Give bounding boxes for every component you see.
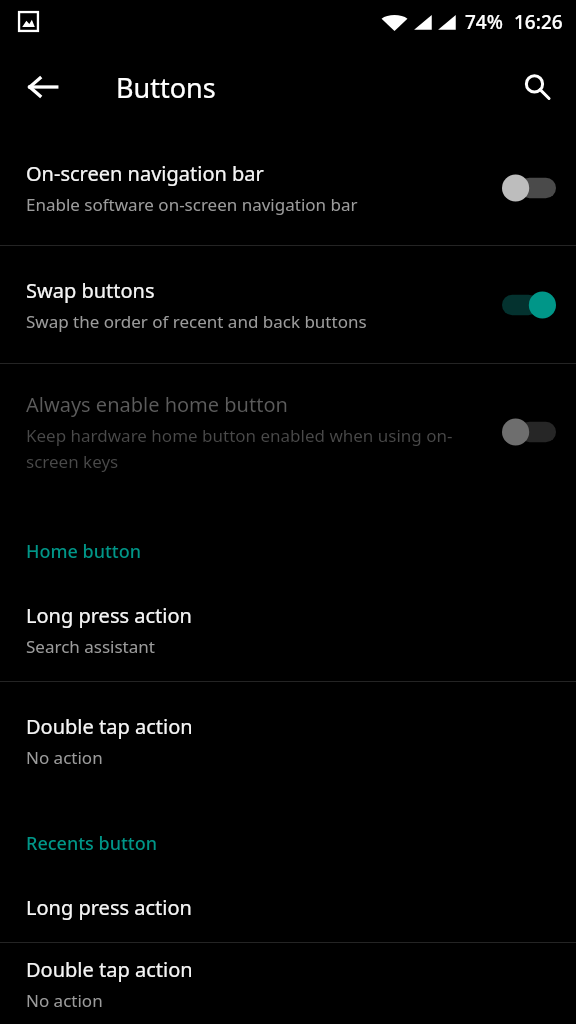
button[interactable]: Always enable home button — [0, 364, 576, 500]
staticText: Home button — [26, 539, 142, 564]
button[interactable]: Long press action — [0, 872, 576, 942]
staticText: Always enable home button — [26, 391, 288, 418]
staticText: Buttons — [116, 69, 216, 106]
staticText: Long press action — [26, 894, 192, 921]
staticText: Double tap action — [26, 956, 193, 983]
staticText: Swap the order of recent and back button… — [26, 310, 367, 333]
button[interactable]: Search — [510, 60, 564, 114]
button[interactable]: Double tap action — [0, 682, 576, 800]
staticText: 16:26 — [514, 9, 563, 35]
staticText: 74% — [465, 9, 503, 35]
button[interactable]: Double tap action — [0, 943, 576, 1024]
button[interactable]: Long press action — [0, 580, 576, 680]
button[interactable]: Back — [16, 60, 70, 114]
staticText: Recents button — [26, 831, 158, 856]
staticText: On-screen navigation bar — [26, 160, 264, 187]
staticText: Search assistant — [26, 635, 155, 658]
button[interactable]: On-screen navigation bar — [0, 130, 576, 245]
staticText: Enable software on-screen navigation bar — [26, 193, 358, 216]
staticText: No action — [26, 989, 103, 1012]
button[interactable]: Swap buttons — [0, 246, 576, 363]
staticText: Long press action — [26, 602, 192, 629]
staticText: Keep hardware home button enabled when u… — [26, 424, 494, 473]
staticText: No action — [26, 746, 103, 769]
staticText: Swap buttons — [26, 277, 155, 304]
staticText: Double tap action — [26, 713, 193, 740]
